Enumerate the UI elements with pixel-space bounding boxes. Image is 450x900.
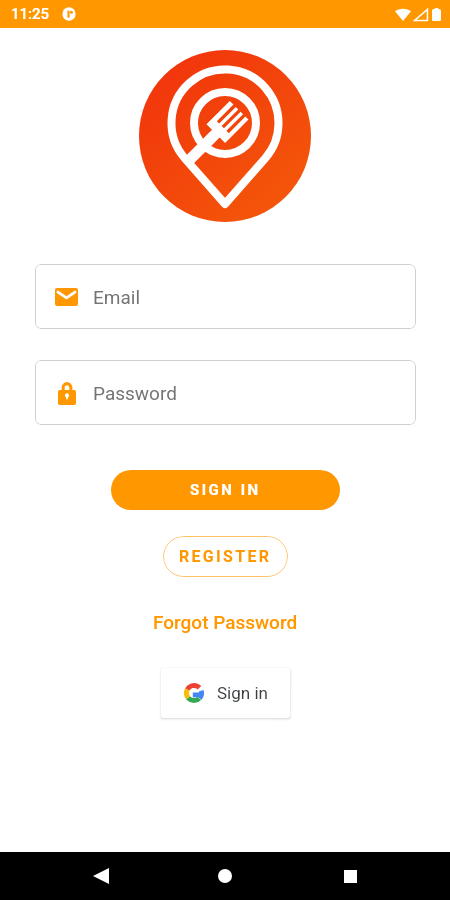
button[interactable]: Home <box>201 852 249 900</box>
staticText: Sign in <box>217 683 268 703</box>
staticText: Forgot Password <box>153 611 298 633</box>
staticText: SIGN IN <box>190 481 261 499</box>
button[interactable]: Recents <box>326 852 374 900</box>
button[interactable]: Password <box>35 360 416 425</box>
button[interactable]: SIGN IN <box>111 470 340 510</box>
staticText: 11:25 <box>11 5 50 23</box>
button[interactable]: REGISTER <box>163 536 288 577</box>
staticText: REGISTER <box>179 547 272 566</box>
button[interactable]: Email <box>35 264 416 329</box>
staticText: Password <box>93 382 177 404</box>
button[interactable]: Back <box>77 852 125 900</box>
button[interactable]: Sign in <box>161 668 290 718</box>
button[interactable]: Forgot Password <box>147 605 304 639</box>
staticText: Email <box>93 286 141 308</box>
